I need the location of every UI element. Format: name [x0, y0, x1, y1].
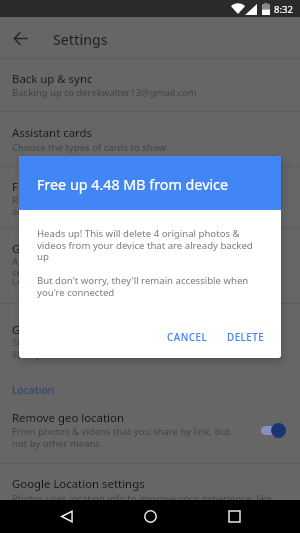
staticText: Backing up to derekwalter13@gmail.com: [12, 86, 197, 99]
staticText: Choose the types of cards to show: [12, 141, 166, 154]
button[interactable]: Free up device storage: [0, 166, 300, 228]
staticText: Automatically back up photos and videos …: [12, 255, 221, 268]
staticText: Remove photos & videos from your device …: [12, 194, 223, 207]
button[interactable]: Back: [6, 24, 34, 52]
button[interactable]: Back up & sync: [0, 58, 300, 111]
staticText: are already backed up: [12, 205, 112, 218]
staticText: Show Google Drive photos & videos in you…: [12, 336, 241, 349]
staticText: not by other means: [12, 437, 101, 450]
staticText: Remove geo location: [12, 410, 124, 426]
button[interactable]: Home: [133, 500, 167, 533]
button[interactable]: Google Drive: [0, 303, 300, 377]
staticText: Location: [12, 383, 55, 397]
staticText: Photos uses location info to improve you…: [12, 492, 272, 505]
staticText: Assistant cards: [12, 125, 92, 141]
staticText: library: [12, 348, 41, 361]
button[interactable]: CANCEL: [161, 326, 214, 349]
staticText: Free up 4.48 MB from device: [37, 175, 229, 194]
button[interactable]: Google Location settings: [0, 463, 300, 516]
staticText: Learn more: [12, 275, 65, 288]
button[interactable]: Back: [50, 500, 84, 533]
staticText: Google Location settings: [12, 476, 145, 492]
button[interactable]: Remove geo location: [0, 400, 300, 463]
button[interactable]: Assistant cards: [0, 111, 300, 166]
staticText: Heads up! This will delete 4 original ph…: [37, 227, 259, 263]
staticText: Free up device storage: [12, 179, 133, 195]
staticText: DELETE: [227, 331, 265, 344]
staticText: Back up & sync: [12, 71, 93, 87]
staticText: Settings: [53, 30, 108, 49]
button[interactable]: DELETE: [221, 326, 271, 349]
staticText: But don't worry, they'll remain accessib…: [37, 274, 259, 299]
button[interactable]: Google Photos backup: [0, 228, 300, 303]
button[interactable]: Recent apps: [217, 500, 251, 533]
staticText: Google Drive: [12, 322, 82, 338]
staticText: From photos & videos that you share by l…: [12, 425, 230, 438]
staticText: 8:32: [274, 3, 294, 16]
staticText: Google Photos backup: [12, 241, 133, 257]
staticText: selected folders: [12, 266, 84, 279]
staticText: CANCEL: [167, 331, 208, 344]
